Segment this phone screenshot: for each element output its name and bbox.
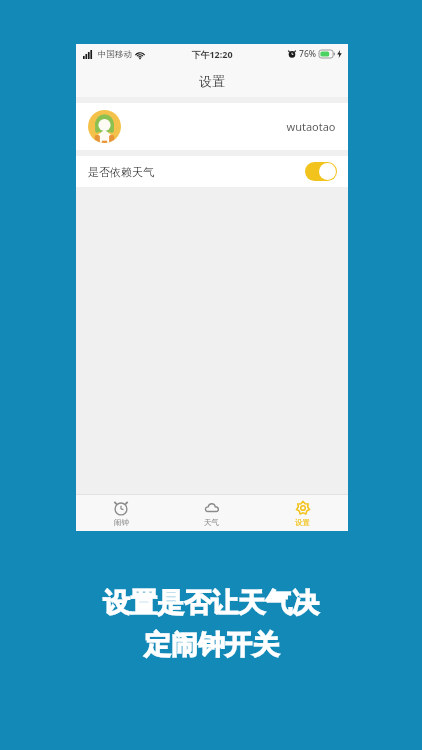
staticText: 设置 xyxy=(199,73,225,89)
staticText: 中国移动 xyxy=(98,49,132,60)
staticText: 闹钟 xyxy=(114,518,129,527)
staticText: wutaotao xyxy=(286,119,336,134)
staticText: 设置是否让天气决 xyxy=(103,586,319,620)
button[interactable]: Depend on weather toggle, on xyxy=(305,162,337,181)
staticText: 76% xyxy=(299,48,316,60)
button[interactable]: 是否依赖天气 xyxy=(76,156,348,187)
staticText: 设置 xyxy=(295,518,310,527)
button[interactable]: wutaotao xyxy=(76,103,348,150)
staticText: 定闹钟开关 xyxy=(144,628,279,662)
staticText: 是否依赖天气 xyxy=(88,165,154,179)
staticText: 下午12:20 xyxy=(191,48,233,60)
button[interactable]: Alarm xyxy=(76,500,166,527)
staticText: 天气 xyxy=(204,518,219,527)
button[interactable]: Settings xyxy=(257,500,348,527)
button[interactable]: Weather xyxy=(166,500,257,527)
